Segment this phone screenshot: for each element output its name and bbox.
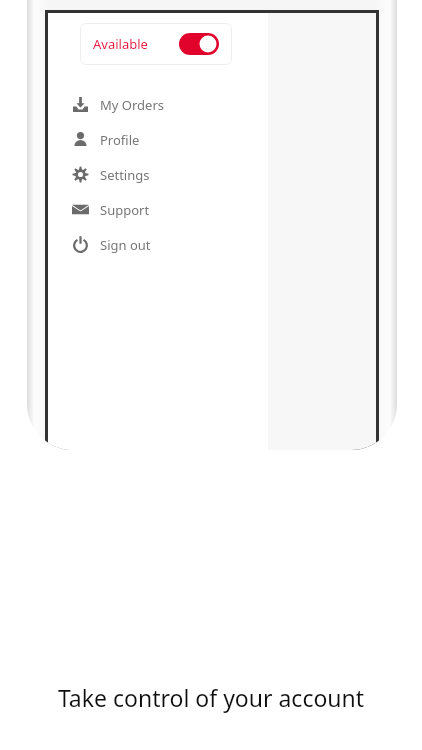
button[interactable]: Sign out [48,227,268,262]
button[interactable]: Settings [48,157,268,192]
button[interactable]: Profile [48,122,268,157]
button[interactable]: Support [48,192,268,227]
staticText: Support [100,201,150,219]
staticText: Profile [100,131,140,149]
button[interactable]: Available [80,23,232,65]
staticText: Sign out [100,236,151,254]
staticText: Settings [100,166,150,184]
staticText: My Orders [100,96,164,114]
staticText: Take control of your account [0,682,422,713]
button[interactable]: My Orders [48,87,268,122]
staticText: Available [93,35,148,53]
